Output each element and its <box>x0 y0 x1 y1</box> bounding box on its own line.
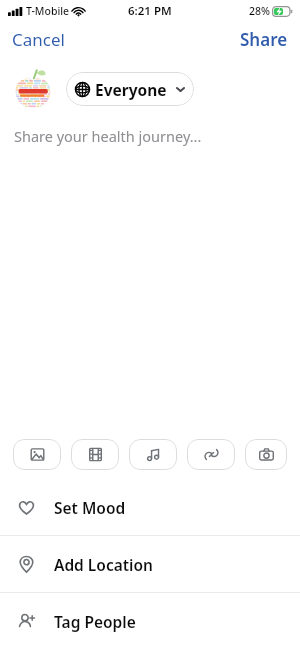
button[interactable]: Add video <box>71 439 119 470</box>
button[interactable]: Profile photo <box>11 67 55 111</box>
button[interactable]: Set Mood <box>0 479 300 535</box>
button[interactable]: Tag People <box>0 593 300 649</box>
button[interactable]: Everyone <box>66 72 194 106</box>
button[interactable]: Share <box>228 23 300 56</box>
button[interactable]: Add music <box>129 439 177 470</box>
staticText: Tag People <box>54 611 136 632</box>
button[interactable]: Add photo <box>13 439 61 470</box>
staticText: Add Location <box>54 554 153 575</box>
staticText: T-Mobile <box>26 4 70 18</box>
staticText: Share your health journey... <box>14 126 202 146</box>
button[interactable]: Cancel <box>0 23 77 56</box>
staticText: Share <box>240 28 288 51</box>
staticText: 6:21 PM <box>128 3 172 19</box>
staticText: Cancel <box>12 28 65 51</box>
staticText: Set Mood <box>54 497 126 518</box>
button[interactable]: Add Location <box>0 536 300 592</box>
button[interactable]: Take photo <box>245 439 287 470</box>
staticText: Everyone <box>95 79 167 100</box>
staticText: 28% <box>249 4 270 18</box>
button[interactable]: Add link <box>187 439 235 470</box>
